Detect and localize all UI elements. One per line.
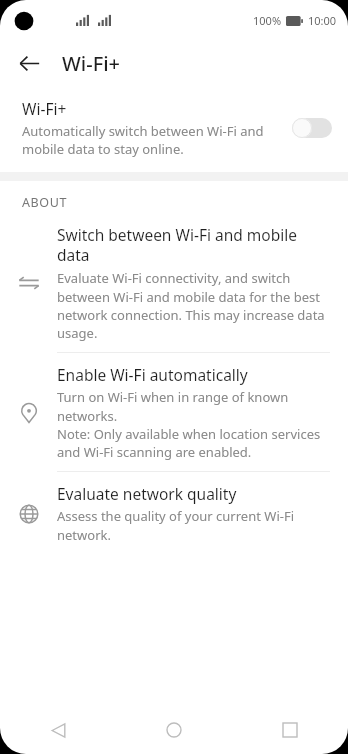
button[interactable]: Home [116, 706, 232, 754]
staticText: 100% [253, 13, 282, 28]
staticText: Assess the quality of your current Wi-Fi… [57, 507, 331, 543]
button[interactable]: Back [12, 46, 46, 80]
staticText: Wi-Fi+ [62, 50, 121, 77]
staticText: Enable Wi-Fi automatically [57, 364, 248, 385]
staticText: Evaluate Wi-Fi connectivity, and switch … [57, 269, 331, 341]
staticText: ABOUT [22, 194, 67, 211]
button[interactable]: Enable Wi-Fi automatically [0, 363, 348, 482]
staticText: Automatically switch between Wi-Fi and m… [22, 122, 268, 158]
staticText: Switch between Wi-Fi and mobile data [57, 224, 331, 266]
staticText: 10:00 [308, 13, 337, 28]
button[interactable]: Evaluate network quality [0, 482, 348, 554]
staticText: Evaluate network quality [57, 483, 237, 504]
staticText: Wi-Fi+ [22, 98, 67, 119]
button[interactable]: Switch between Wi-Fi and mobile data [0, 223, 348, 363]
staticText: Turn on Wi-Fi when in range of known net… [57, 388, 331, 460]
button[interactable]: Back [0, 706, 116, 754]
button[interactable]: Recent apps [232, 706, 348, 754]
button[interactable]: Wi-Fi+ [0, 86, 348, 172]
button[interactable]: Wi-Fi+ toggle [292, 117, 332, 139]
